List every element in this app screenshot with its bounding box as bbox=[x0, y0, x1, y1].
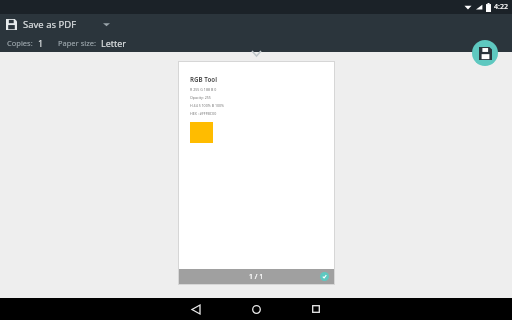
button[interactable]: Back bbox=[166, 298, 226, 320]
staticText: R 255 G 188 B 0 bbox=[190, 87, 217, 92]
staticText: 1 / 1 bbox=[249, 272, 264, 282]
button[interactable]: Save as PDF bbox=[472, 40, 498, 66]
button[interactable]: Expand print options bbox=[245, 47, 267, 59]
staticText: 4:22 bbox=[494, 2, 508, 12]
button[interactable]: Save as PDF bbox=[6, 15, 110, 33]
button[interactable]: Letter bbox=[101, 37, 127, 49]
button[interactable]: 1 bbox=[38, 37, 44, 49]
staticText: HEX : #FFFBC00 bbox=[190, 111, 217, 116]
staticText: Save as PDF bbox=[23, 18, 77, 31]
button[interactable]: Home bbox=[226, 298, 286, 320]
button[interactable]: RGB Tool bbox=[179, 62, 334, 284]
button[interactable]: Recent apps bbox=[286, 298, 346, 320]
staticText: Letter bbox=[101, 37, 127, 49]
button[interactable]: Page selected bbox=[320, 272, 329, 281]
staticText: Paper size: bbox=[58, 38, 96, 48]
staticText: Opacity: 255 bbox=[190, 95, 211, 100]
staticText: H 44 S 100% B 100% bbox=[190, 103, 225, 108]
staticText: RGB Tool bbox=[190, 75, 217, 83]
staticText: 1 bbox=[38, 37, 44, 49]
staticText: Copies: bbox=[7, 38, 33, 48]
